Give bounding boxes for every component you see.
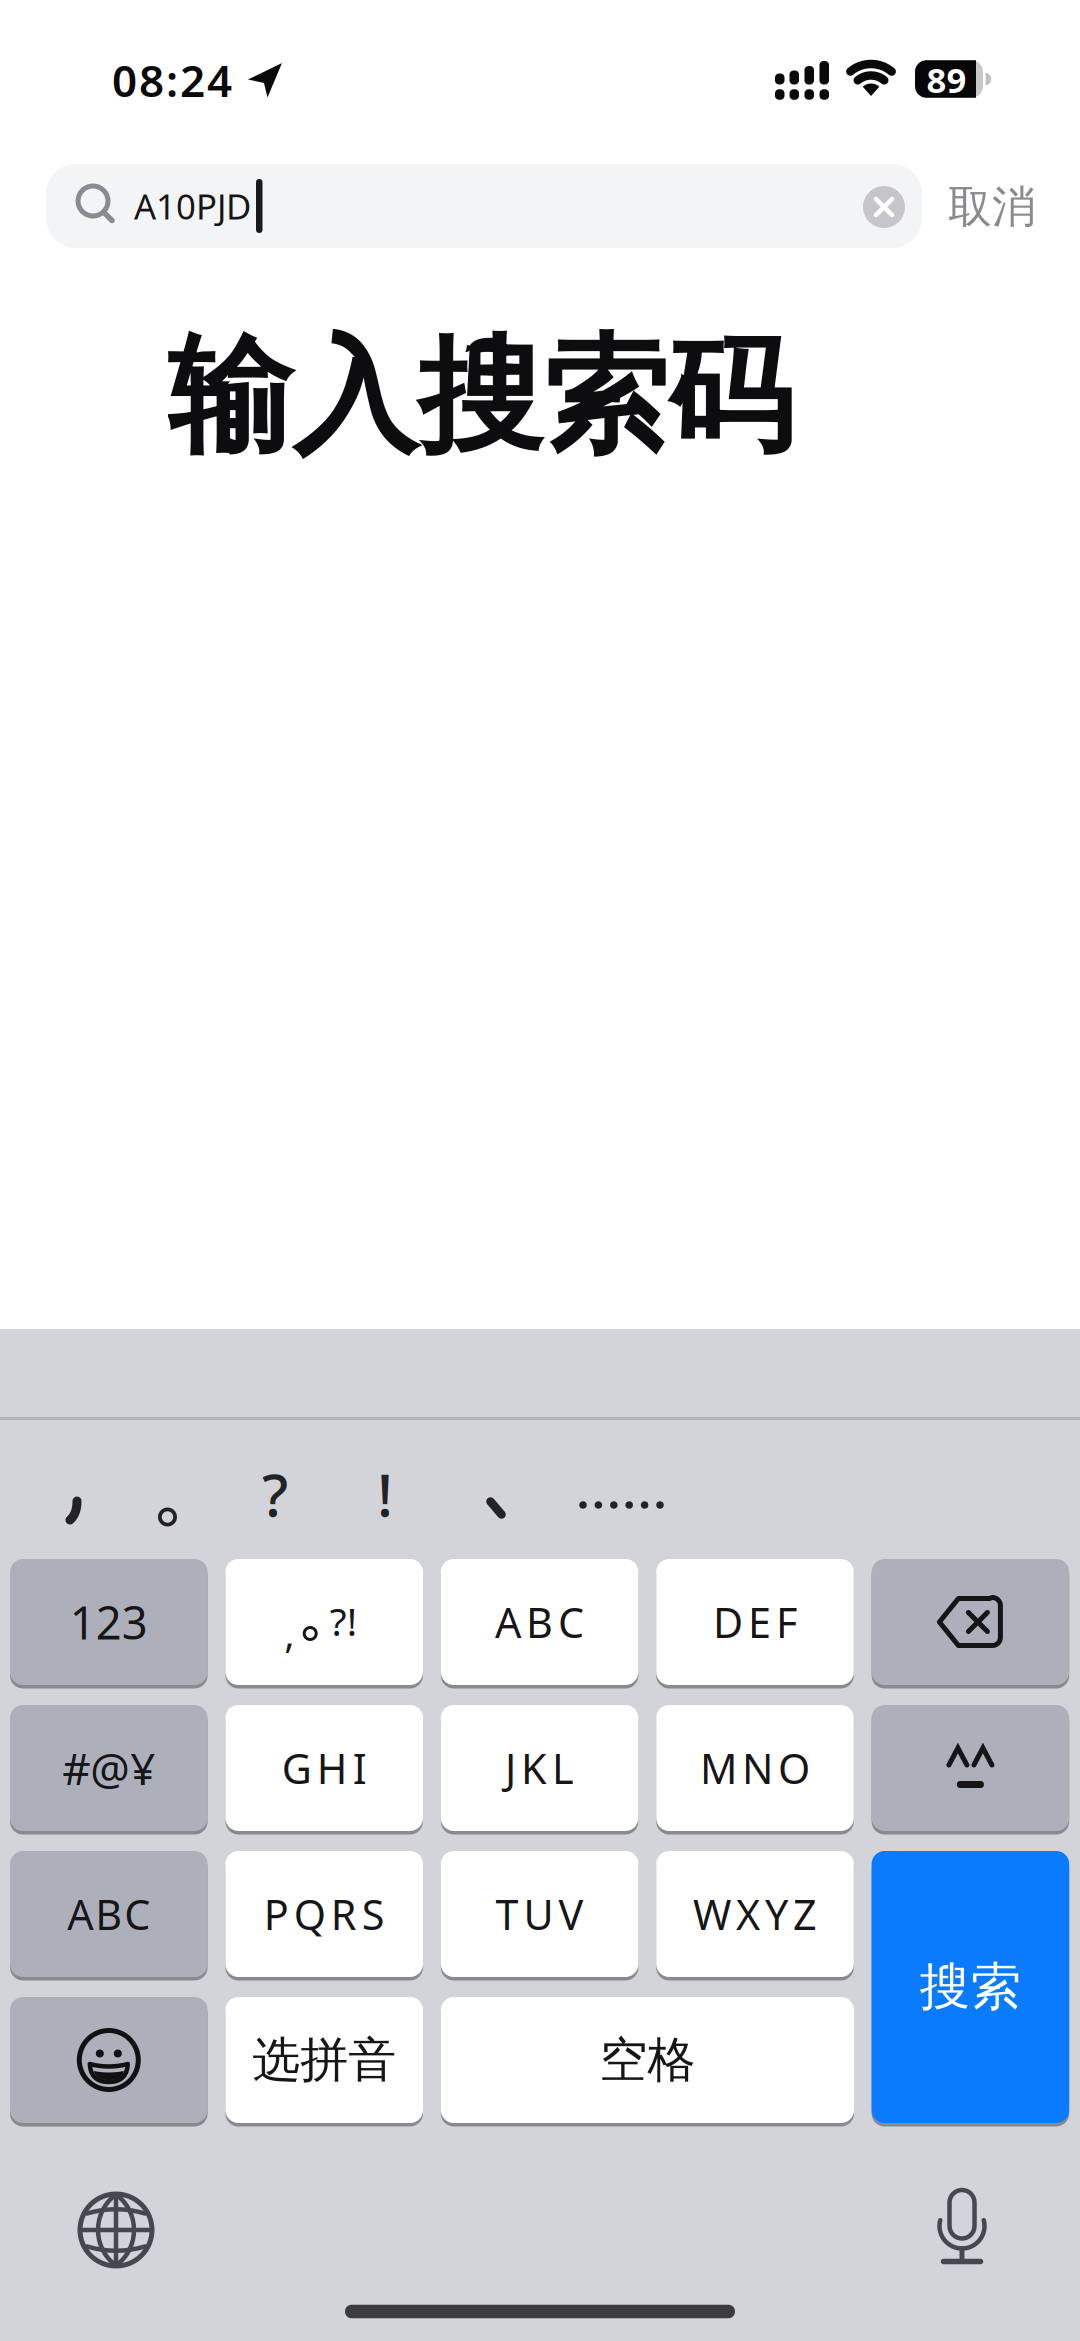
- button[interactable]: 123: [10, 1559, 208, 1685]
- button[interactable]: ?: [262, 1455, 288, 1533]
- button[interactable]: ABC: [441, 1559, 638, 1685]
- button[interactable]: 搜索码输入框: [46, 164, 922, 248]
- staticText: WXYZ: [693, 1887, 817, 1941]
- button[interactable]: 选拼音: [225, 1997, 423, 2123]
- button[interactable]: PQRS: [225, 1851, 423, 1977]
- staticText: GHI: [282, 1741, 367, 1795]
- button[interactable]: JKL: [441, 1705, 638, 1831]
- staticText: #@¥: [62, 1739, 155, 1797]
- staticText: 89: [926, 56, 966, 102]
- button[interactable]: 取消: [948, 180, 1036, 234]
- staticText: 空格: [599, 2030, 695, 2089]
- staticText: DEF: [713, 1595, 797, 1649]
- staticText: ?!: [330, 1595, 357, 1647]
- button[interactable]: MNO: [656, 1705, 854, 1831]
- staticText: PQRS: [264, 1887, 385, 1941]
- button[interactable]: ABC: [10, 1851, 208, 1977]
- staticText: ABC: [495, 1595, 584, 1649]
- staticText: MNO: [700, 1741, 810, 1795]
- staticText: JKL: [505, 1741, 574, 1795]
- button[interactable]: 下一个键盘: [76, 2190, 156, 2270]
- staticText: TUV: [496, 1887, 584, 1941]
- staticText: 输入搜索码: [167, 320, 792, 474]
- button[interactable]: GHI: [225, 1705, 423, 1831]
- staticText: 123: [70, 1592, 148, 1652]
- staticText: ?: [262, 1455, 288, 1533]
- staticText: A10PJD: [134, 183, 251, 229]
- button[interactable]: TUV: [441, 1851, 638, 1977]
- button[interactable]: #@¥: [10, 1705, 208, 1831]
- staticText: 取消: [948, 180, 1036, 234]
- button[interactable]: ……: [579, 1499, 667, 1511]
- staticText: 08:24: [112, 51, 232, 109]
- button[interactable]: 、: [482, 1494, 508, 1520]
- button[interactable]: !: [377, 1455, 393, 1533]
- button[interactable]: 搜索: [872, 1851, 1069, 2123]
- button[interactable]: 删除: [872, 1559, 1069, 1685]
- staticText: 选拼音: [252, 2030, 396, 2089]
- button[interactable]: WXYZ: [656, 1851, 854, 1977]
- staticText: 搜索: [919, 1956, 1021, 2018]
- button[interactable]: 。: [155, 1505, 179, 1529]
- button[interactable]: ，: [64, 1495, 86, 1527]
- button[interactable]: 清除搜索文本: [863, 186, 905, 228]
- staticText: ABC: [67, 1887, 150, 1941]
- button[interactable]: ,: [225, 1559, 423, 1685]
- button[interactable]: 分词: [872, 1705, 1069, 1831]
- staticText: ,: [284, 1607, 294, 1659]
- staticText: !: [377, 1455, 393, 1533]
- button[interactable]: 听写: [922, 2186, 1002, 2266]
- button[interactable]: DEF: [656, 1559, 854, 1685]
- button[interactable]: 表情符号: [10, 1997, 208, 2123]
- button[interactable]: 空格: [441, 1997, 854, 2123]
